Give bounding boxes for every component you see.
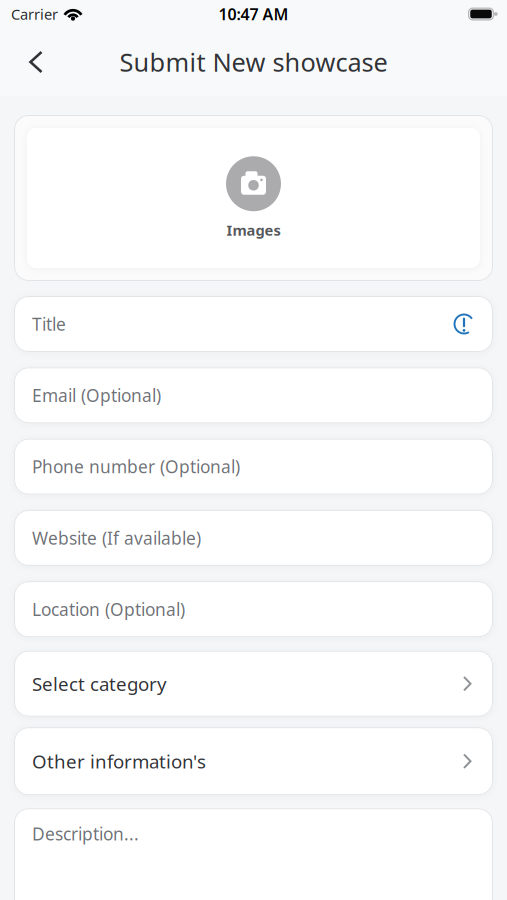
staticText: Title [32,312,66,335]
button[interactable]: Location (Optional) [14,581,493,637]
button[interactable]: Back [28,50,44,73]
staticText: Email (Optional) [32,384,161,407]
button[interactable]: Description... [14,808,493,900]
button[interactable]: Select category [14,651,493,717]
staticText: Phone number (Optional) [32,455,240,478]
staticText: Submit New showcase [119,45,387,79]
staticText: Description... [32,822,139,845]
button[interactable]: Website (If available) [14,510,493,566]
staticText: Images [226,220,280,240]
button[interactable]: Add images [14,115,493,281]
button[interactable]: Email (Optional) [14,367,493,423]
staticText: Carrier [11,4,58,24]
button[interactable]: Other information's [14,727,493,795]
staticText: 10:47 AM [218,3,288,25]
staticText: Location (Optional) [32,598,185,621]
button[interactable]: Phone number (Optional) [14,439,493,495]
button[interactable]: Title [14,296,493,352]
staticText: Other information's [32,749,206,774]
staticText: Select category [32,671,167,696]
staticText: Website (If available) [32,526,201,549]
